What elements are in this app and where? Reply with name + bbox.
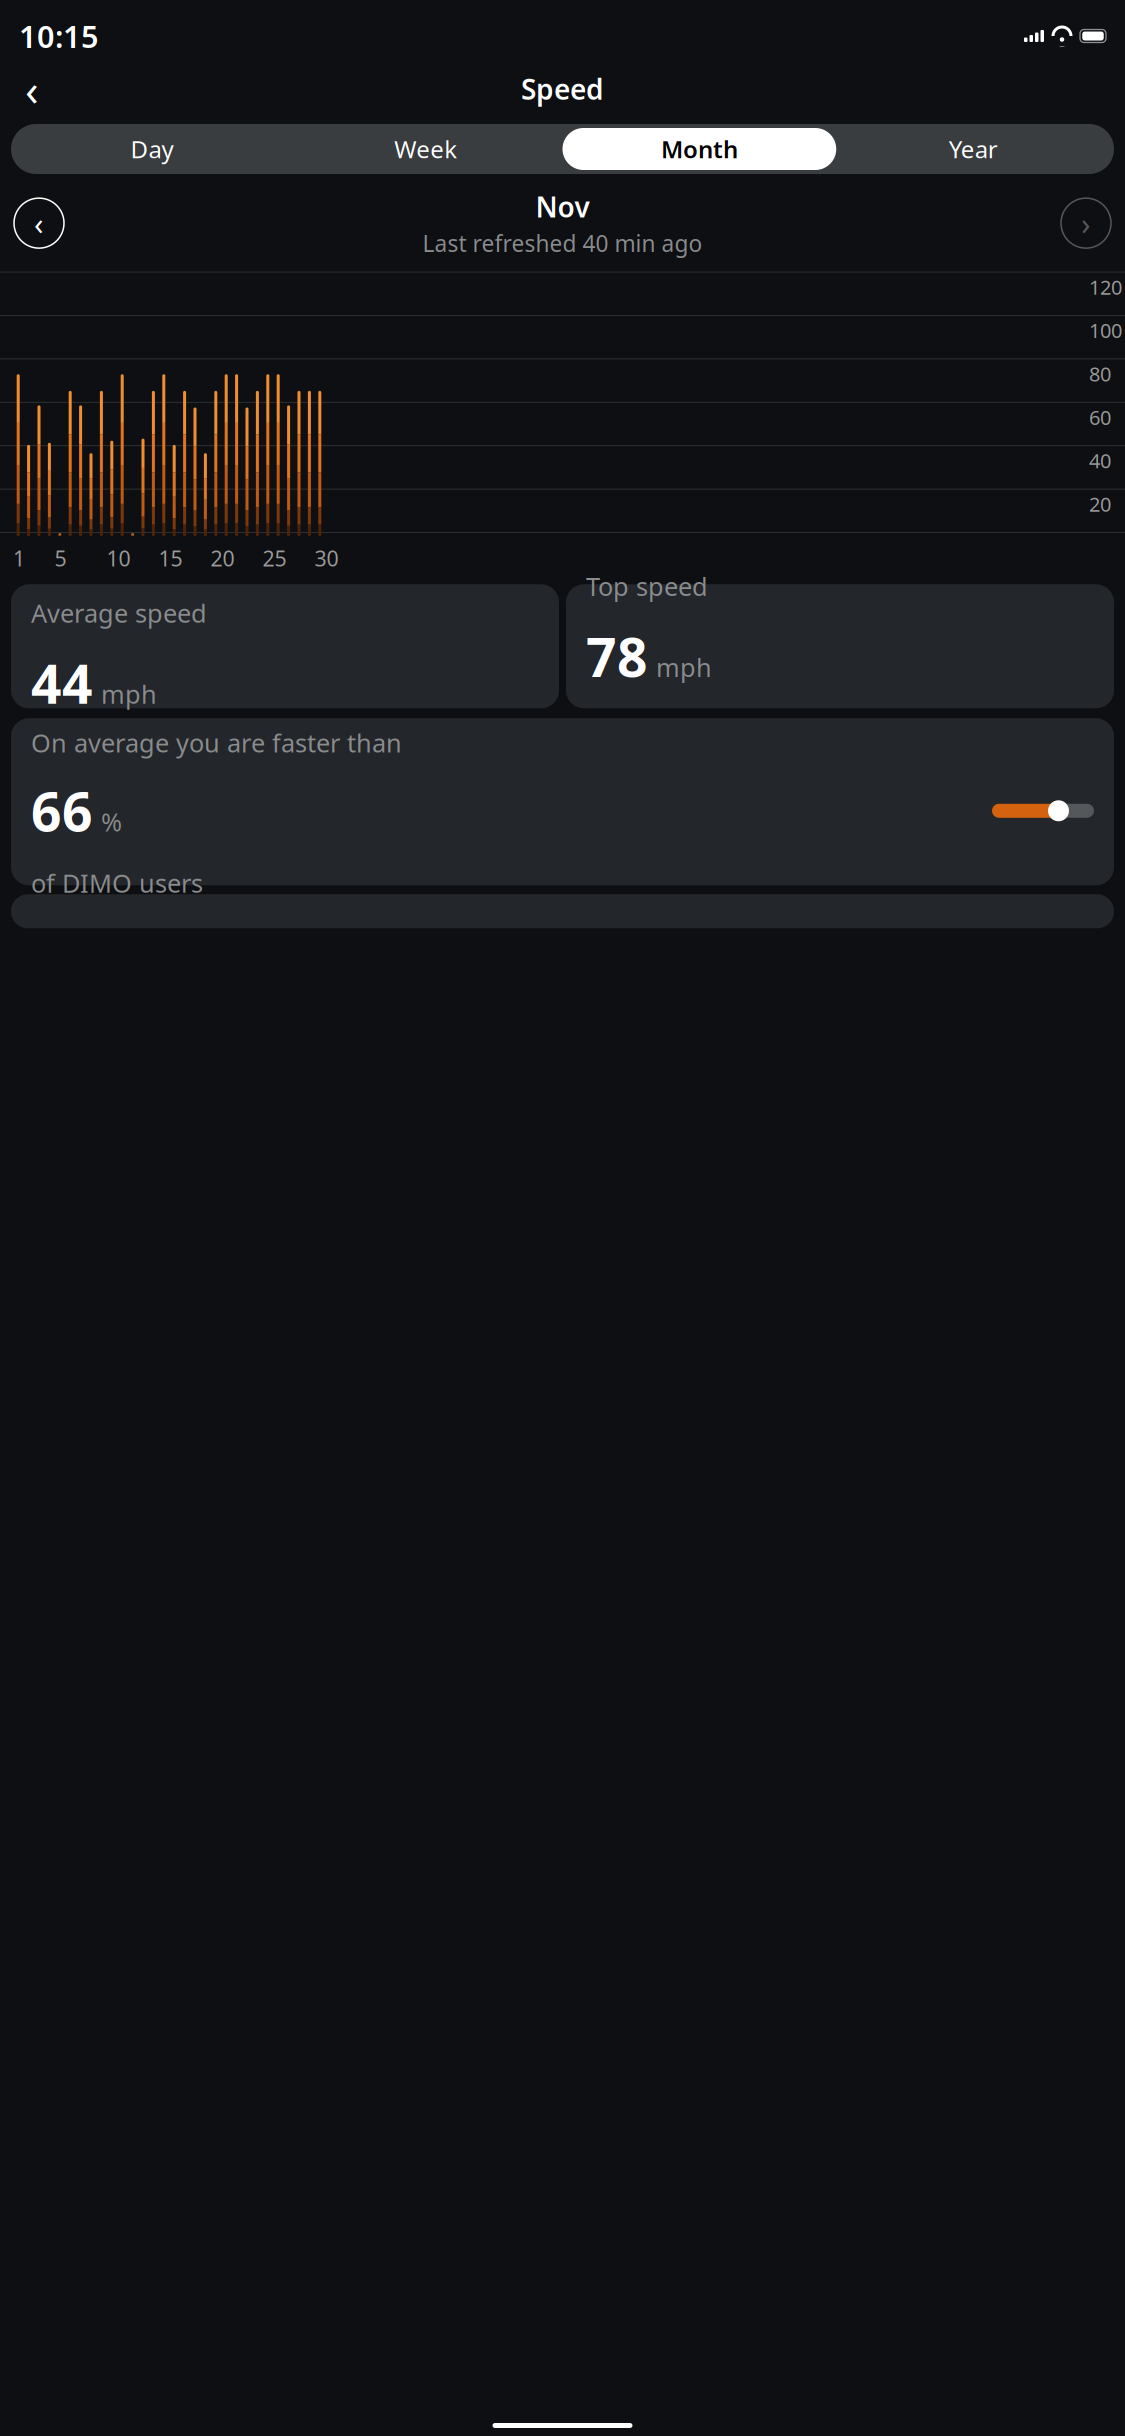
staticText: of DIMO users bbox=[31, 866, 203, 900]
staticText: 80 bbox=[1089, 360, 1111, 387]
staticText: 5 bbox=[55, 544, 67, 572]
staticText: 10 bbox=[107, 544, 131, 572]
staticText: 60 bbox=[1089, 404, 1111, 430]
staticText: mph bbox=[101, 677, 157, 711]
button[interactable]: Month bbox=[562, 128, 836, 170]
staticText: Top speed bbox=[586, 569, 708, 603]
staticText: On average you are faster than bbox=[31, 726, 402, 759]
staticText: Day bbox=[130, 133, 173, 165]
staticText: Year bbox=[949, 133, 998, 165]
staticText: Week bbox=[394, 133, 457, 165]
staticText: Last refreshed 40 min ago bbox=[422, 228, 702, 258]
staticText: 120 bbox=[1089, 274, 1122, 300]
button[interactable]: Next month bbox=[1059, 196, 1113, 250]
staticText: 20 bbox=[211, 544, 235, 572]
staticText: 40 bbox=[1089, 447, 1111, 474]
staticText: 25 bbox=[263, 544, 287, 572]
staticText: 20 bbox=[1089, 491, 1111, 517]
button[interactable]: Back bbox=[10, 67, 54, 111]
staticText: 1 bbox=[13, 544, 25, 572]
staticText: Average speed bbox=[31, 596, 207, 630]
staticText: 78 bbox=[586, 621, 648, 692]
staticText: 15 bbox=[159, 544, 183, 572]
staticText: ‹ bbox=[34, 203, 44, 243]
staticText: 11/21/24 bbox=[586, 712, 688, 745]
staticText: Month bbox=[661, 133, 738, 165]
staticText: ‹ bbox=[25, 60, 39, 118]
staticText: › bbox=[1081, 203, 1091, 243]
button[interactable]: Year bbox=[836, 128, 1110, 170]
button[interactable]: Previous month bbox=[12, 196, 66, 250]
staticText: 44 bbox=[31, 648, 93, 718]
staticText: Speed bbox=[521, 70, 604, 108]
button[interactable]: Week bbox=[289, 128, 563, 170]
staticText: 100 bbox=[1089, 317, 1122, 344]
staticText: % bbox=[101, 805, 122, 838]
button[interactable]: Day bbox=[15, 128, 289, 170]
staticText: Nov bbox=[535, 188, 589, 225]
staticText: mph bbox=[656, 650, 712, 684]
staticText: 66 bbox=[31, 775, 93, 846]
staticText: 30 bbox=[315, 544, 339, 572]
staticText: 10:15 bbox=[19, 16, 99, 56]
